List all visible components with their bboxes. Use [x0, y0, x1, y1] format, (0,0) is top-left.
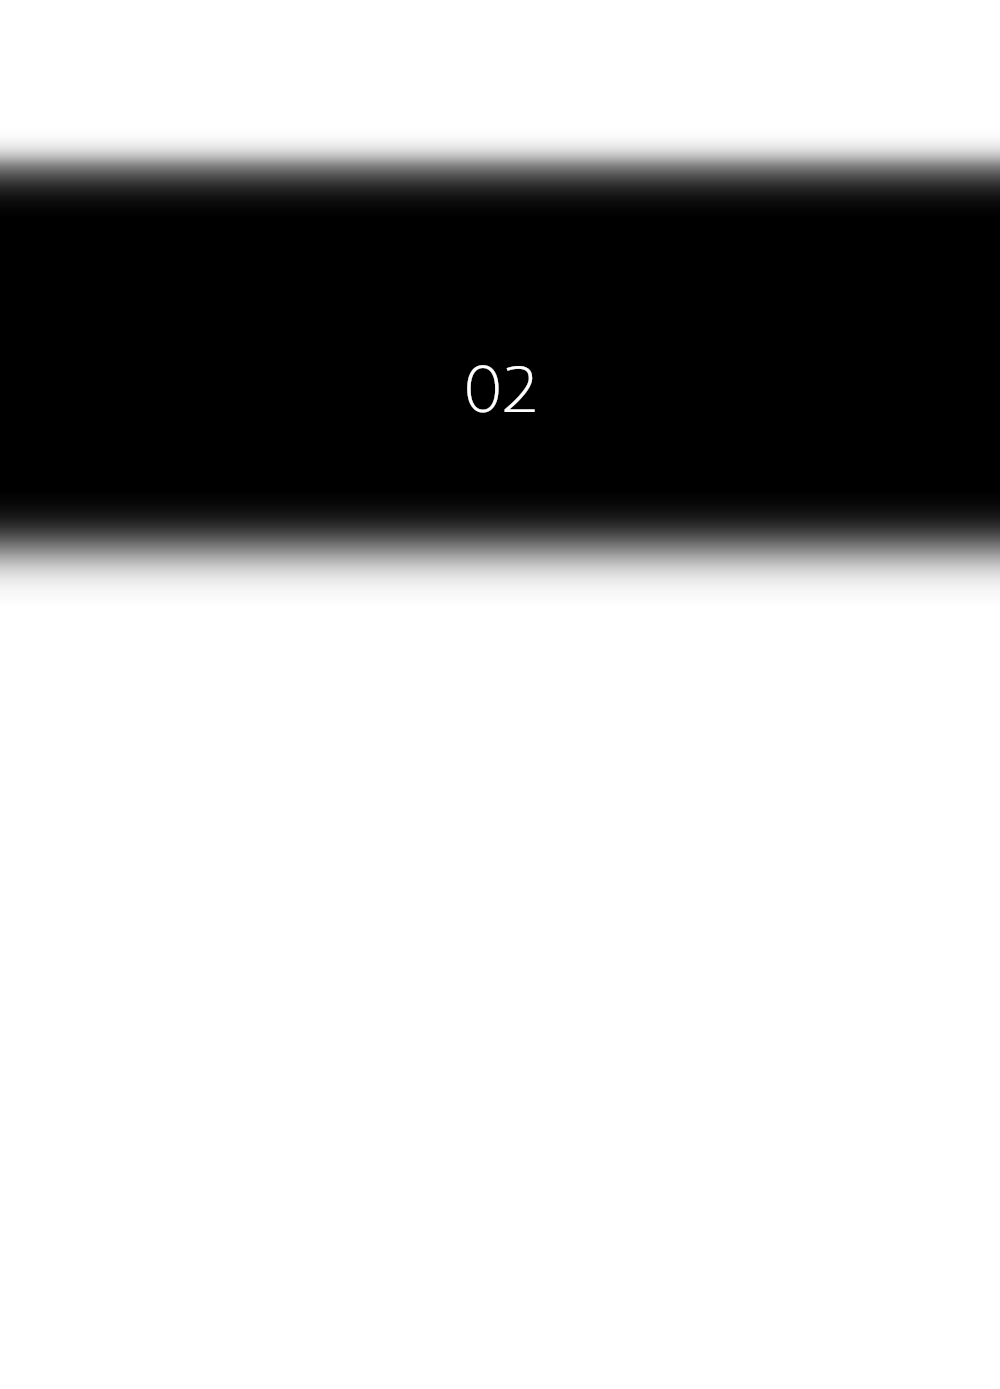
button[interactable]: Open chapter 02: [0, 185, 1000, 585]
button[interactable]: Chapter 02 title page: [0, 0, 1000, 1389]
staticText: 02: [462, 358, 537, 427]
